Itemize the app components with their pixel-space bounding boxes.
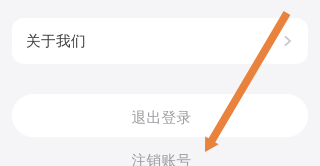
button[interactable]: 退出登录 (12, 94, 308, 137)
staticText: 注销账号 (131, 151, 191, 166)
button[interactable]: 注销账号 (12, 137, 308, 166)
button[interactable]: 关于我们 (12, 18, 308, 64)
staticText: 关于我们 (26, 32, 86, 50)
staticText: 退出登录 (131, 108, 191, 126)
